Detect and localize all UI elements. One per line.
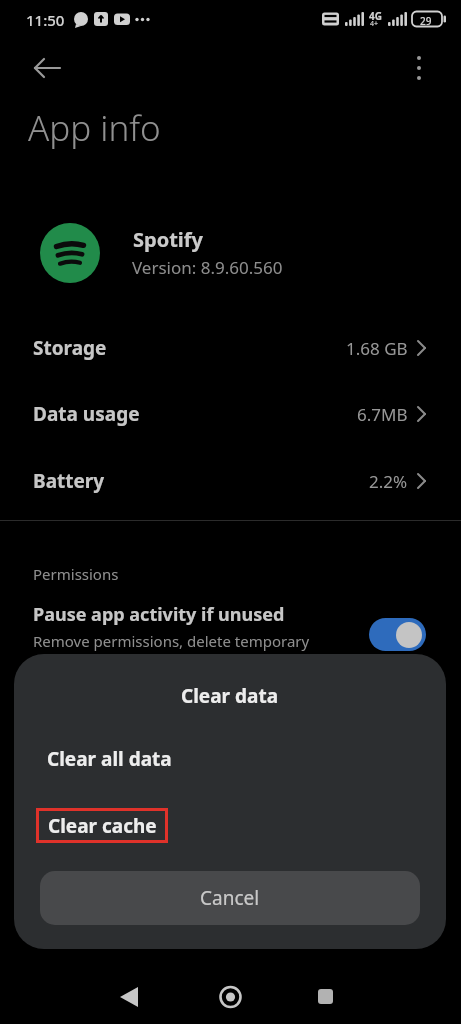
- button[interactable]: Clear cache: [36, 808, 168, 843]
- staticText: Version: 8.9.60.560: [132, 256, 283, 279]
- staticText: 4G: [369, 9, 382, 23]
- staticText: Remove permissions, delete temporary: [33, 631, 310, 651]
- staticText: App info: [28, 104, 161, 152]
- button[interactable]: [0, 975, 153, 1024]
- button[interactable]: [28, 50, 68, 86]
- staticText: 1.68 GB: [346, 337, 408, 360]
- button[interactable]: Battery: [0, 463, 461, 499]
- staticText: 29: [420, 14, 432, 28]
- staticText: Data usage: [33, 401, 140, 427]
- button[interactable]: Data usage: [0, 396, 461, 432]
- staticText: Clear data: [181, 683, 279, 709]
- staticText: Pause app activity if unused: [33, 602, 285, 627]
- staticText: Storage: [33, 335, 107, 361]
- button[interactable]: [406, 52, 432, 84]
- staticText: Cancel: [200, 885, 260, 911]
- staticText: 6.7MB: [357, 403, 408, 426]
- staticText: Clear cache: [48, 813, 157, 839]
- button[interactable]: Cancel: [40, 871, 420, 925]
- staticText: Permissions: [33, 564, 119, 584]
- button[interactable]: Storage: [0, 330, 461, 366]
- staticText: Spotify: [133, 226, 203, 253]
- staticText: 4+: [370, 19, 379, 29]
- staticText: 11:50: [26, 10, 65, 30]
- staticText: 2.2%: [369, 470, 408, 493]
- button[interactable]: [307, 975, 461, 1024]
- button[interactable]: [369, 618, 426, 651]
- button[interactable]: [153, 975, 307, 1024]
- staticText: Battery: [33, 468, 105, 494]
- button[interactable]: Clear all data: [47, 746, 172, 772]
